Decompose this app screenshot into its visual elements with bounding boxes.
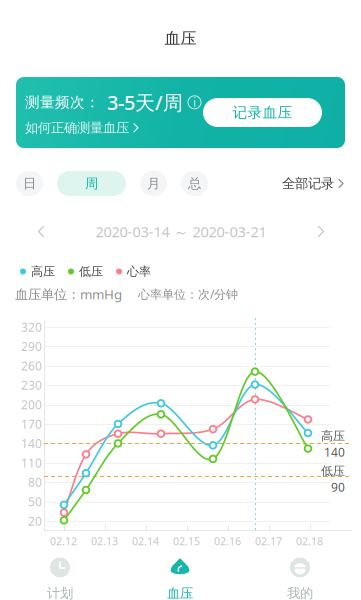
staticText: 心率 <box>127 264 151 279</box>
staticText: 140 <box>324 444 345 460</box>
button[interactable]: 计划 <box>0 552 120 600</box>
staticText: 290 <box>21 338 42 354</box>
staticText: 测量频次： <box>25 93 100 111</box>
staticText: i <box>193 94 196 110</box>
staticText: 周 <box>85 175 98 192</box>
staticText: 血压单位：mmHg <box>15 285 122 303</box>
staticText: 140 <box>21 435 42 451</box>
staticText: 02.12 <box>50 534 77 548</box>
staticText: 心率单位：次/分钟 <box>138 286 238 302</box>
staticText: 计划 <box>47 585 73 600</box>
staticText: 02.13 <box>91 534 118 548</box>
button[interactable]: 全部记录 <box>282 175 344 192</box>
staticText: 月 <box>147 175 160 192</box>
staticText: 110 <box>21 455 42 471</box>
staticText: 总 <box>188 175 201 192</box>
button[interactable]: Previous week <box>28 218 54 244</box>
staticText: 80 <box>28 474 42 490</box>
button[interactable]: 日 <box>16 171 43 196</box>
button[interactable]: 总 <box>181 171 208 196</box>
button[interactable]: 记录血压 <box>203 98 322 127</box>
button[interactable]: 血压 <box>120 552 240 600</box>
staticText: 血压 <box>164 29 196 48</box>
staticText: 低压 <box>79 264 103 279</box>
staticText: 02.18 <box>296 534 323 548</box>
staticText: 3-5天/周 <box>107 89 183 116</box>
staticText: 02.14 <box>132 534 159 548</box>
staticText: 高压 <box>321 429 345 443</box>
staticText: 02.16 <box>214 534 241 548</box>
button[interactable]: 我的 <box>240 552 360 600</box>
staticText: 2020-03-14 ～ 2020-03-21 <box>95 222 266 241</box>
button[interactable]: Next week <box>308 218 334 244</box>
staticText: 02.15 <box>173 534 200 548</box>
staticText: 低压 <box>321 464 345 478</box>
staticText: 90 <box>331 479 345 495</box>
staticText: 20 <box>28 513 42 529</box>
staticText: 全部记录 <box>282 175 334 192</box>
staticText: 260 <box>21 358 42 374</box>
staticText: 50 <box>28 494 42 509</box>
staticText: 02.17 <box>255 534 282 548</box>
button[interactable]: 月 <box>140 171 167 196</box>
staticText: 230 <box>21 377 42 393</box>
staticText: 200 <box>21 397 42 412</box>
staticText: 日 <box>23 175 36 192</box>
staticText: 如何正确测量血压 <box>25 120 129 136</box>
staticText: 170 <box>21 416 42 432</box>
staticText: 记录血压 <box>232 103 292 121</box>
staticText: 我的 <box>287 585 313 600</box>
staticText: 高压 <box>31 264 55 279</box>
button[interactable]: 周 <box>57 171 126 196</box>
staticText: 血压 <box>167 585 193 600</box>
staticText: 320 <box>21 319 42 335</box>
